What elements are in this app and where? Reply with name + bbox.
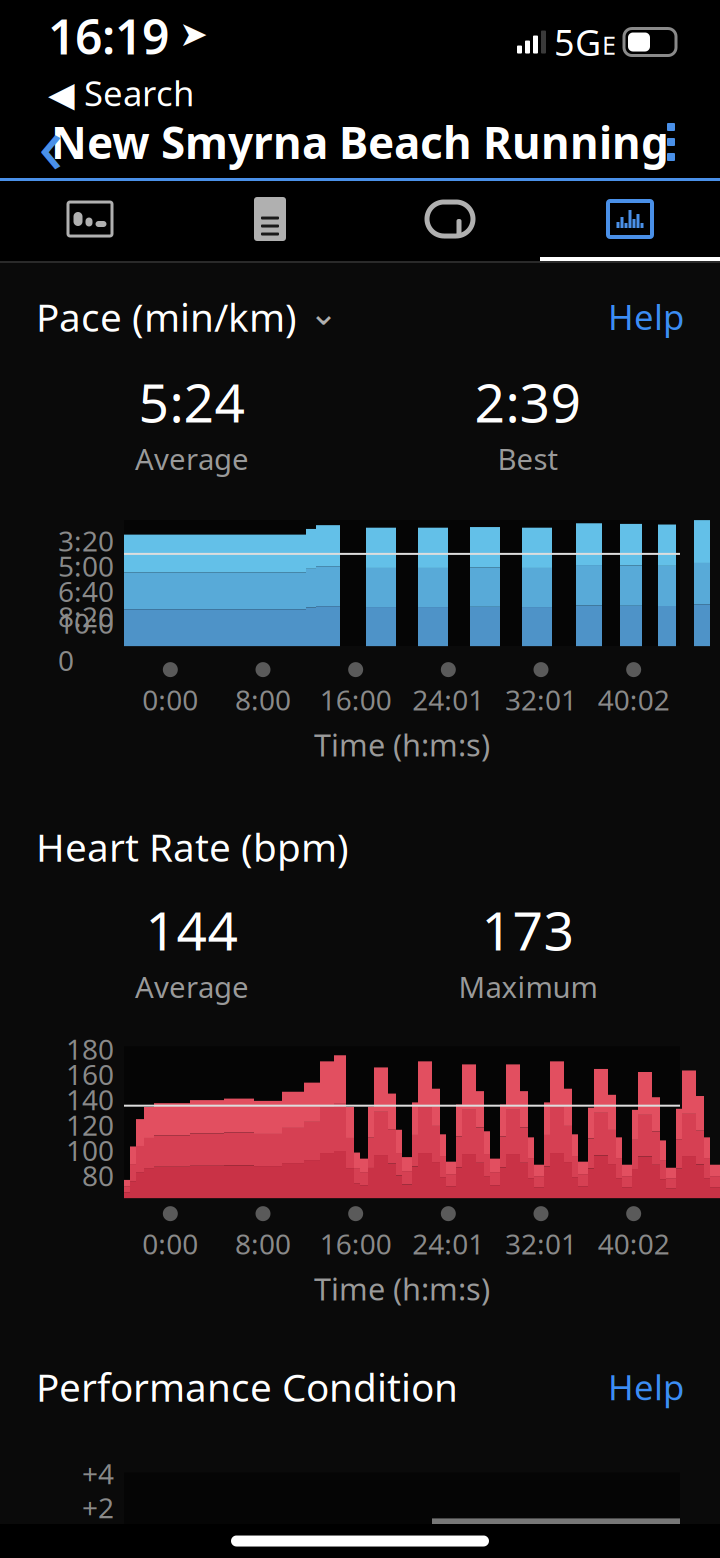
staticText: 40:02 [598, 681, 670, 718]
staticText: ◀ Search [48, 70, 194, 116]
button[interactable]: Charts [540, 181, 720, 261]
staticText: 0:00 [142, 1225, 198, 1262]
staticText: 2:39 [474, 366, 581, 437]
staticText: ‹ [38, 87, 64, 197]
staticText: Time (h:m:s) [314, 1268, 490, 1309]
staticText: 80 [82, 1157, 114, 1194]
staticText: Help [608, 1364, 684, 1410]
staticText: 32:01 [505, 681, 577, 718]
staticText: 173 [481, 894, 574, 965]
staticText: ⌄ [309, 293, 338, 332]
button[interactable]: Help [608, 294, 684, 340]
staticText: 180 [66, 1030, 114, 1067]
staticText: Average [135, 439, 249, 478]
staticText: Performance Condition [36, 1361, 458, 1412]
staticText: 24:01 [412, 1225, 484, 1262]
staticText: 0:00 [142, 681, 198, 718]
staticText: 5G [554, 18, 601, 66]
staticText: 120 [66, 1106, 114, 1143]
button[interactable]: Help [608, 1364, 684, 1410]
button[interactable]: Laps [360, 181, 540, 261]
staticText: 8:20 [58, 598, 114, 635]
staticText: Pace (min/km) [36, 291, 297, 342]
staticText: 8:00 [235, 1225, 291, 1262]
button[interactable]: Back [14, 107, 88, 177]
staticText: 160 [66, 1056, 114, 1093]
staticText: 16:19 [48, 4, 169, 68]
staticText: Average [135, 967, 249, 1006]
staticText: 24:01 [412, 681, 484, 718]
staticText: 100 [66, 1132, 114, 1169]
button[interactable]: Details [180, 181, 360, 261]
staticText: Time (h:m:s) [314, 724, 490, 765]
staticText: E [602, 28, 616, 62]
button[interactable]: Map [0, 181, 180, 261]
staticText: Maximum [458, 967, 597, 1006]
staticText: 8:00 [235, 681, 291, 718]
button[interactable]: More options [636, 107, 706, 177]
staticText: Help [608, 294, 684, 340]
staticText: 16:00 [320, 681, 392, 718]
staticText: 10:00 [58, 604, 114, 679]
staticText: 5:24 [138, 366, 245, 437]
staticText: 40:02 [598, 1225, 670, 1262]
staticText: Best [497, 439, 558, 478]
button[interactable]: ◀ Search [48, 70, 194, 116]
staticText: 144 [145, 894, 238, 965]
staticText: +4 [82, 1455, 114, 1492]
button[interactable]: Pace (min/km) [36, 291, 338, 342]
staticText: 16:00 [320, 1225, 392, 1262]
staticText: 32:01 [505, 1225, 577, 1262]
staticText: 5:00 [58, 547, 114, 584]
staticText: ➤ [179, 14, 208, 54]
staticText: +2 [82, 1489, 114, 1526]
staticText: Heart Rate (bpm) [36, 821, 349, 872]
staticText: 3:20 [58, 522, 114, 559]
staticText: 6:40 [58, 572, 114, 610]
staticText: New Smyrna Beach Running [51, 113, 669, 171]
staticText: 140 [66, 1081, 114, 1118]
